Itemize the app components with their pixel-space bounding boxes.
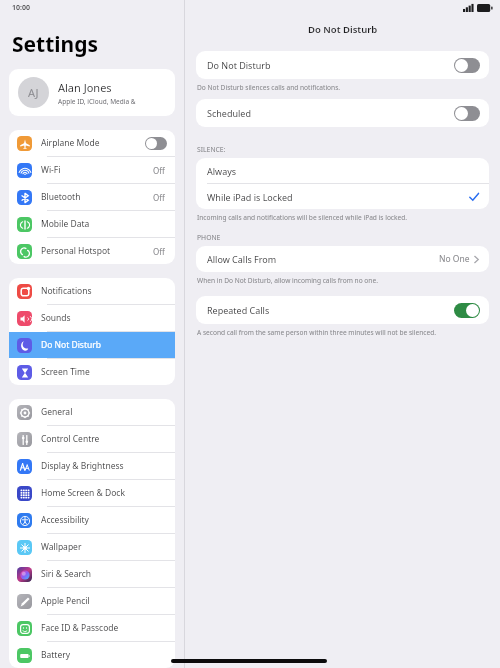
staticText: Sounds <box>41 312 167 324</box>
staticText: Off <box>153 192 165 203</box>
staticText: A second call from the same person withi… <box>197 328 437 337</box>
staticText: Scheduled <box>207 107 454 119</box>
staticText: Repeated Calls <box>207 304 454 316</box>
staticText: Allow Calls From <box>207 253 439 265</box>
staticText: Notifications <box>41 285 167 297</box>
staticText: Mobile Data <box>41 218 167 230</box>
button[interactable]: Home Screen & Dock <box>9 480 175 506</box>
button[interactable]: Accessibility <box>9 507 175 533</box>
staticText: Face ID & Passcode <box>41 622 167 634</box>
button[interactable]: Sounds <box>9 305 175 331</box>
button[interactable]: Bluetooth <box>9 184 175 210</box>
staticText: Apple Pencil <box>41 595 167 607</box>
staticText: Accessibility <box>41 514 167 526</box>
staticText: Incoming calls and notifications will be… <box>197 213 408 222</box>
button[interactable]: Apple Pencil <box>9 588 175 614</box>
staticText: Wallpaper <box>41 541 167 553</box>
button[interactable]: Airplane Mode <box>9 130 175 156</box>
staticText: Do Not Disturb silences calls and notifi… <box>197 83 341 92</box>
button[interactable]: Personal Hotspot <box>9 238 175 264</box>
button[interactable]: Off <box>454 106 480 121</box>
staticText: Alan Jones <box>58 80 112 95</box>
button[interactable]: Siri & Search <box>9 561 175 587</box>
staticText: Siri & Search <box>41 568 167 580</box>
staticText: Apple ID, iCloud, Media & Purchases <box>58 97 166 106</box>
staticText: AJ <box>28 85 39 100</box>
button[interactable]: Battery <box>9 642 175 668</box>
staticText: Do Not Disturb <box>207 59 454 71</box>
staticText: Settings <box>12 30 99 59</box>
button[interactable]: Off <box>145 137 167 150</box>
staticText: Always <box>207 165 479 177</box>
staticText: Off <box>153 246 165 257</box>
staticText: General <box>41 406 167 418</box>
staticText: Off <box>153 165 165 176</box>
staticText: Bluetooth <box>41 191 153 203</box>
button[interactable]: Wallpaper <box>9 534 175 560</box>
button[interactable]: Always <box>196 158 489 183</box>
staticText: Do Not Disturb <box>41 339 167 351</box>
button[interactable]: Display & Brightness <box>9 453 175 479</box>
staticText: Wi-Fi <box>41 164 153 176</box>
button[interactable]: Do Not Disturb <box>196 51 489 79</box>
staticText: Display & Brightness <box>41 460 167 472</box>
staticText: When in Do Not Disturb, allow incoming c… <box>197 276 378 285</box>
button[interactable]: Off <box>454 58 480 73</box>
staticText: Control Centre <box>41 433 167 445</box>
button[interactable]: On <box>454 303 480 318</box>
staticText: Screen Time <box>41 366 167 378</box>
button[interactable]: Repeated Calls <box>196 296 489 324</box>
button[interactable]: AJ <box>9 69 175 116</box>
button[interactable]: Notifications <box>9 278 175 304</box>
button[interactable]: While iPad is Locked <box>196 184 489 209</box>
button[interactable]: Control Centre <box>9 426 175 452</box>
button[interactable]: General <box>9 399 175 425</box>
staticText: While iPad is Locked <box>207 191 469 203</box>
staticText: Airplane Mode <box>41 137 145 149</box>
staticText: 10:00 <box>12 3 30 13</box>
button[interactable]: Mobile Data <box>9 211 175 237</box>
staticText: Personal Hotspot <box>41 245 153 257</box>
staticText: PHONE <box>197 233 221 242</box>
button[interactable]: Do Not Disturb <box>9 332 175 358</box>
button[interactable]: Face ID & Passcode <box>9 615 175 641</box>
staticText: Do Not Disturb <box>308 23 378 36</box>
staticText: Home Screen & Dock <box>41 487 167 499</box>
button[interactable]: Scheduled <box>196 99 489 127</box>
button[interactable]: Screen Time <box>9 359 175 385</box>
button[interactable]: Wi-Fi <box>9 157 175 183</box>
staticText: SILENCE: <box>197 145 226 154</box>
staticText: Battery <box>41 649 167 661</box>
button[interactable]: Allow Calls From <box>196 246 489 272</box>
staticText: No One <box>439 253 470 265</box>
